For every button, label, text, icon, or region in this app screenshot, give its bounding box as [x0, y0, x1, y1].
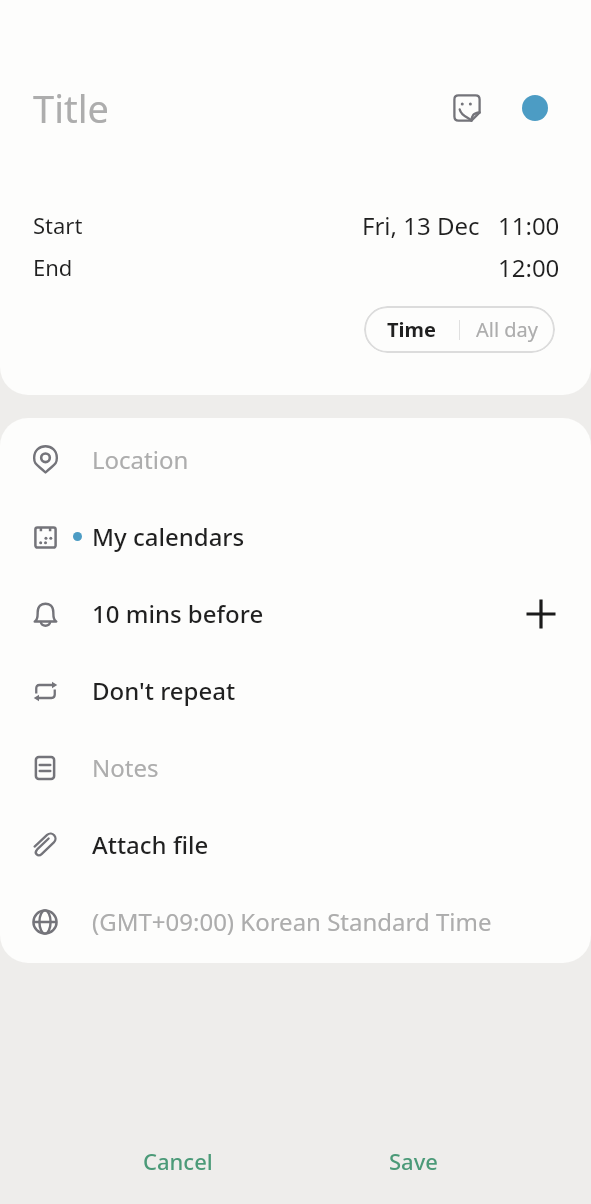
staticText: All day	[476, 316, 539, 343]
button[interactable]: Location	[0, 421, 591, 498]
staticText: Time	[387, 316, 436, 343]
staticText: (GMT+09:00) Korean Standard Time	[92, 905, 492, 938]
button[interactable]: Time	[364, 306, 459, 353]
button[interactable]: Title	[33, 73, 443, 143]
button[interactable]: End	[0, 246, 591, 288]
button[interactable]: Save	[295, 1119, 531, 1203]
button[interactable]: Start	[0, 204, 591, 246]
staticText: Attach file	[92, 828, 209, 861]
button[interactable]: My calendars	[0, 498, 591, 575]
staticText: Fri, 13 Dec	[362, 209, 480, 242]
button[interactable]: Notes	[0, 729, 591, 806]
button[interactable]: Don't repeat	[0, 652, 591, 729]
staticText: Title	[33, 82, 109, 134]
staticText: Save	[389, 1146, 438, 1176]
button[interactable]: Add sticker	[443, 84, 491, 132]
staticText: Notes	[92, 751, 159, 784]
button[interactable]: 10 mins before	[0, 575, 591, 652]
staticText: My calendars	[92, 520, 245, 553]
staticText: 12:00	[498, 251, 560, 284]
button[interactable]: All day	[460, 306, 555, 353]
staticText: Don't repeat	[92, 674, 236, 707]
button[interactable]: Add notification	[519, 592, 563, 636]
button[interactable]: Attach file	[0, 806, 591, 883]
staticText: Cancel	[143, 1146, 213, 1176]
staticText: Start	[33, 210, 83, 240]
staticText: Location	[92, 443, 189, 476]
staticText: 10 mins before	[92, 597, 264, 630]
button[interactable]: (GMT+09:00) Korean Standard Time	[0, 883, 591, 960]
button[interactable]: Event colour	[511, 84, 559, 132]
button[interactable]: Cancel	[60, 1119, 295, 1203]
staticText: End	[33, 252, 73, 282]
staticText: 11:00	[498, 209, 560, 242]
